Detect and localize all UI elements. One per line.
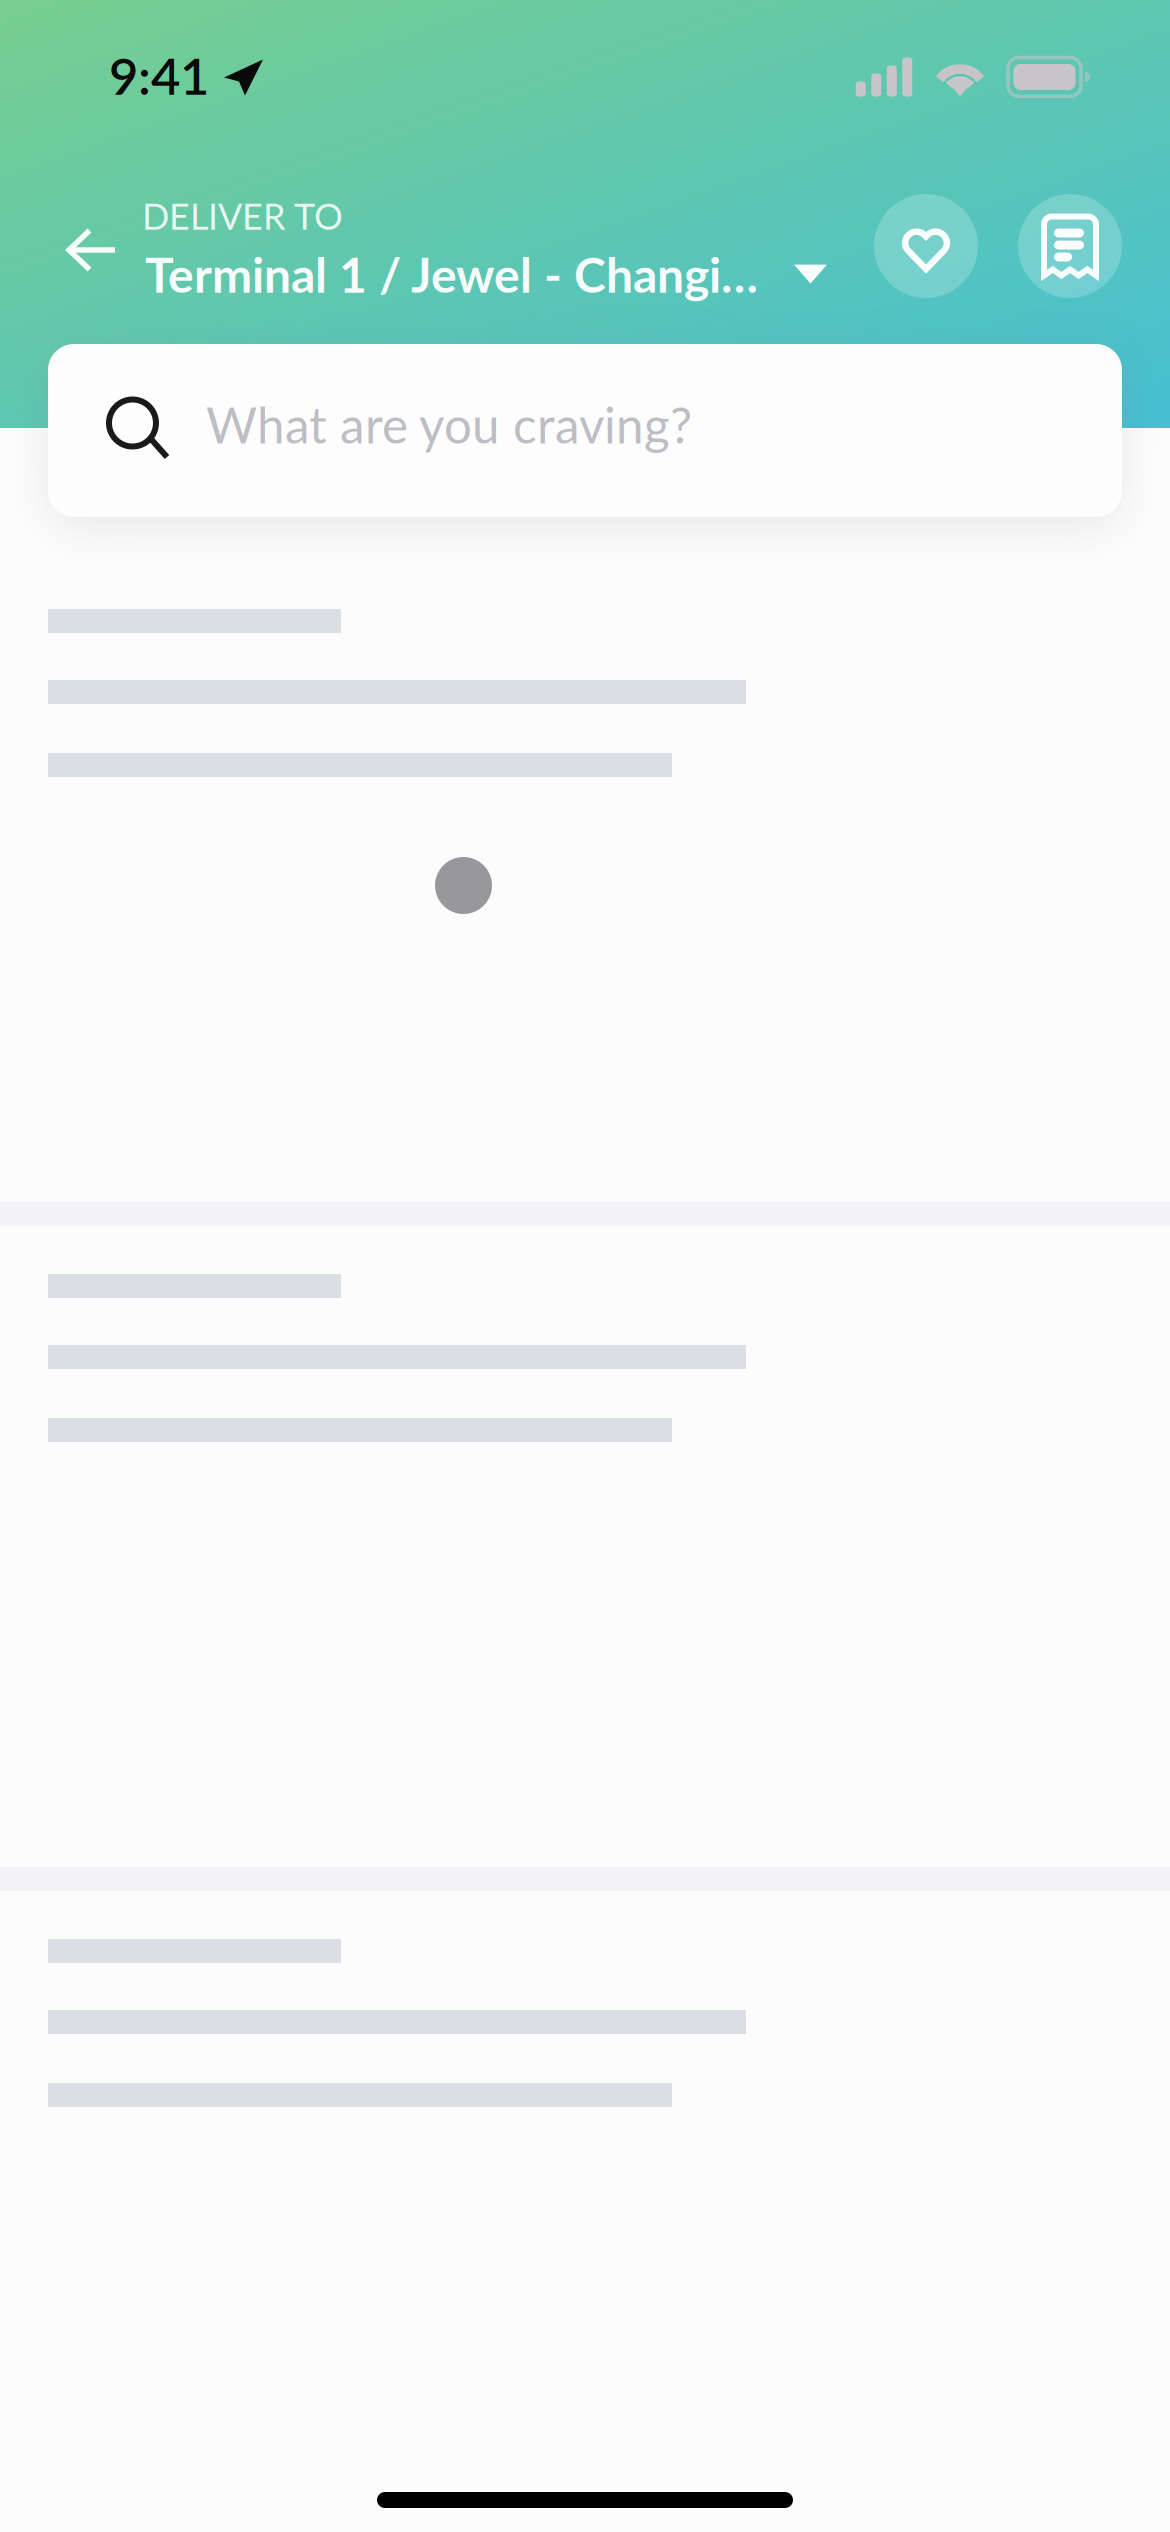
staticText: Terminal 1 / Jewel - Changi…: [145, 245, 758, 303]
button[interactable]: Favourites: [874, 194, 978, 298]
staticText: DELIVER TO: [142, 194, 343, 237]
button[interactable]: Orders: [1018, 194, 1122, 298]
button[interactable]: What are you craving?: [48, 344, 1122, 517]
staticText: 9:41: [109, 45, 209, 105]
button[interactable]: Back: [48, 196, 146, 296]
staticText: What are you craving?: [206, 395, 692, 454]
button[interactable]: DELIVER TO: [146, 196, 846, 296]
